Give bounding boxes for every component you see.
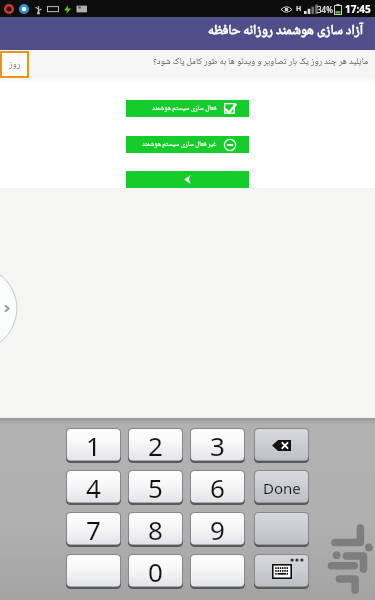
staticText: H <box>296 4 302 14</box>
button[interactable]: 9 <box>190 512 245 547</box>
button[interactable]: 5 <box>128 470 183 505</box>
staticText: 4 <box>86 470 101 505</box>
staticText: 0 <box>148 554 163 589</box>
staticText: 9 <box>210 512 225 547</box>
staticText: روز <box>9 57 21 72</box>
button[interactable]: 4 <box>66 470 121 505</box>
button[interactable]: فعال سازی سیستم هوشمند <box>126 100 249 117</box>
staticText: 3 <box>210 428 225 463</box>
button[interactable] <box>190 554 245 589</box>
button[interactable]: Backspace <box>254 428 309 463</box>
staticText: فعال سازی سیستم هوشمند <box>152 103 217 114</box>
button[interactable]: 1 <box>66 428 121 463</box>
staticText: 6 <box>210 470 225 505</box>
button[interactable]: 6 <box>190 470 245 505</box>
button[interactable]: Done <box>254 470 309 505</box>
button[interactable]: Open drawer <box>0 267 17 350</box>
button[interactable]: روز <box>0 51 29 78</box>
button[interactable]: 7 <box>66 512 121 547</box>
staticText: 7 <box>86 512 101 547</box>
staticText: 5 <box>148 470 163 505</box>
button[interactable]: 0 <box>128 554 183 589</box>
staticText: 1 <box>86 428 101 463</box>
button[interactable]: غیر فعال سازی سیستم هوشمند <box>126 136 249 153</box>
button[interactable]: 2 <box>128 428 183 463</box>
button[interactable]: 3 <box>190 428 245 463</box>
staticText: 17:45 <box>345 2 371 16</box>
staticText: غیر فعال سازی سیستم هوشمند <box>142 139 217 150</box>
staticText: 8 <box>148 512 163 547</box>
staticText: Done <box>263 478 301 498</box>
button[interactable]: Blank <box>254 512 309 547</box>
button[interactable] <box>66 554 121 589</box>
staticText: 34% <box>317 4 333 15</box>
staticText: مایلید هر چند روز یک بار تصاویر و ویدئو … <box>153 54 369 69</box>
button[interactable]: آزاد سازی هوشمند روزانه حافظه <box>0 17 375 50</box>
button[interactable]: 8 <box>128 512 183 547</box>
staticText: آزاد سازی هوشمند روزانه حافظه <box>208 20 364 43</box>
button[interactable]: Back <box>126 171 249 188</box>
staticText: 2 <box>148 428 163 463</box>
button[interactable]: Switch keyboard <box>254 554 309 589</box>
